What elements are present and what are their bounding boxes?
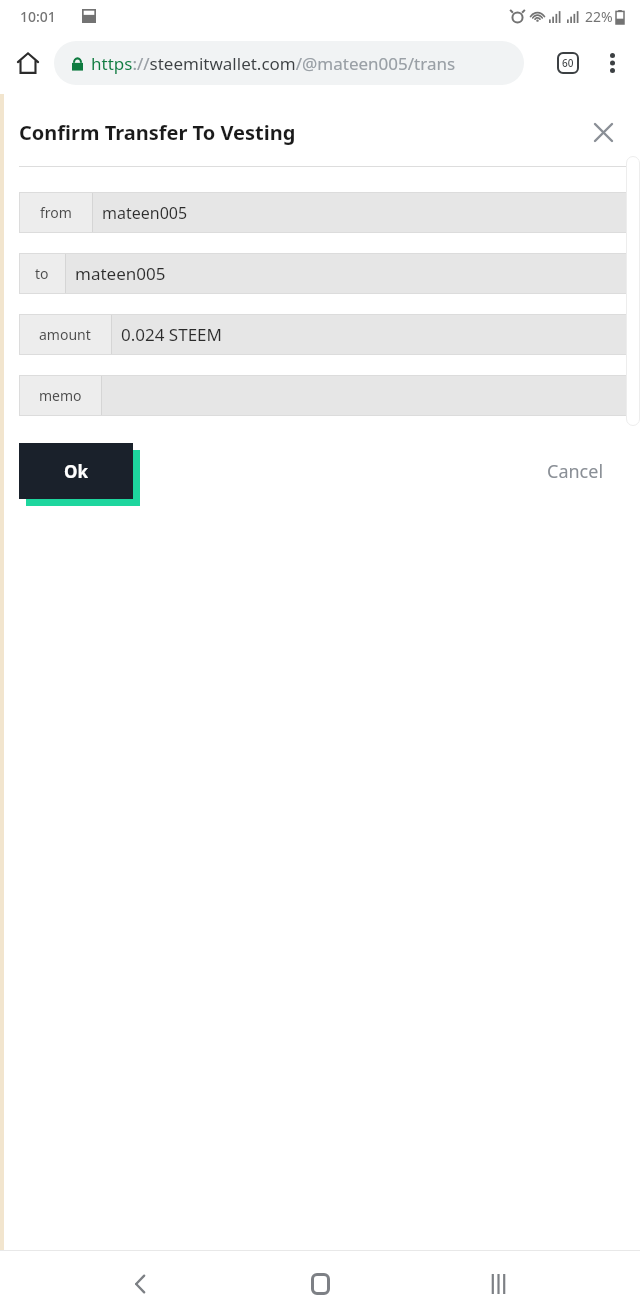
button[interactable]: Home	[298, 1262, 342, 1306]
staticText: Cancel	[547, 459, 604, 484]
staticText: mateen005	[75, 262, 166, 285]
button[interactable]: Back	[118, 1262, 162, 1306]
staticText: Ok	[64, 460, 88, 483]
staticText: https://steemitwallet.com/@mateen005/tra…	[91, 52, 456, 75]
button[interactable]: Recent apps	[476, 1262, 520, 1306]
button[interactable]: Tabs	[548, 43, 588, 83]
button[interactable]: Home	[8, 43, 48, 83]
staticText: mateen005	[102, 202, 188, 224]
button[interactable]: https://steemitwallet.com/@mateen005/tra…	[54, 41, 524, 85]
staticText: Confirm Transfer To Vesting	[19, 119, 296, 146]
button[interactable]: Ok	[19, 443, 133, 499]
staticText: to	[35, 264, 49, 283]
button[interactable]: Close	[586, 115, 620, 149]
staticText: 10:01	[20, 7, 56, 26]
staticText: memo	[39, 386, 82, 405]
staticText: 60	[562, 56, 574, 70]
button[interactable]: More options	[592, 43, 632, 83]
staticText: from	[40, 203, 72, 222]
staticText: 22%	[585, 7, 613, 26]
staticText: amount	[39, 325, 91, 344]
button[interactable]: Cancel	[547, 449, 604, 493]
staticText: 0.024 STEEM	[121, 323, 222, 346]
